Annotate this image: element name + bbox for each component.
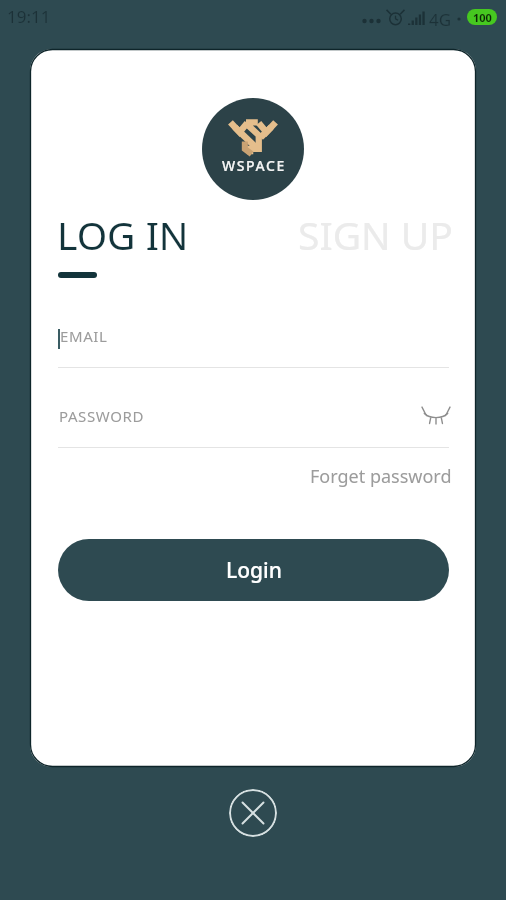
- staticText: WSPACE: [222, 156, 286, 175]
- button[interactable]: SIGN UP: [298, 208, 453, 261]
- button[interactable]: Show password: [418, 397, 454, 433]
- button[interactable]: PASSWORD: [58, 399, 449, 439]
- staticText: EMAIL: [60, 326, 108, 346]
- button[interactable]: Forget password: [300, 461, 452, 491]
- staticText: 4G: [429, 8, 452, 31]
- button[interactable]: LOG IN: [57, 208, 189, 278]
- button[interactable]: Close: [229, 789, 277, 837]
- staticText: PASSWORD: [59, 406, 144, 426]
- staticText: 100: [473, 10, 492, 25]
- staticText: Login: [226, 556, 282, 585]
- staticText: 19:11: [7, 5, 51, 28]
- button[interactable]: Login: [58, 539, 449, 601]
- staticText: Forget password: [310, 464, 452, 489]
- button[interactable]: EMAIL: [58, 319, 449, 359]
- staticText: LOG IN: [57, 208, 189, 261]
